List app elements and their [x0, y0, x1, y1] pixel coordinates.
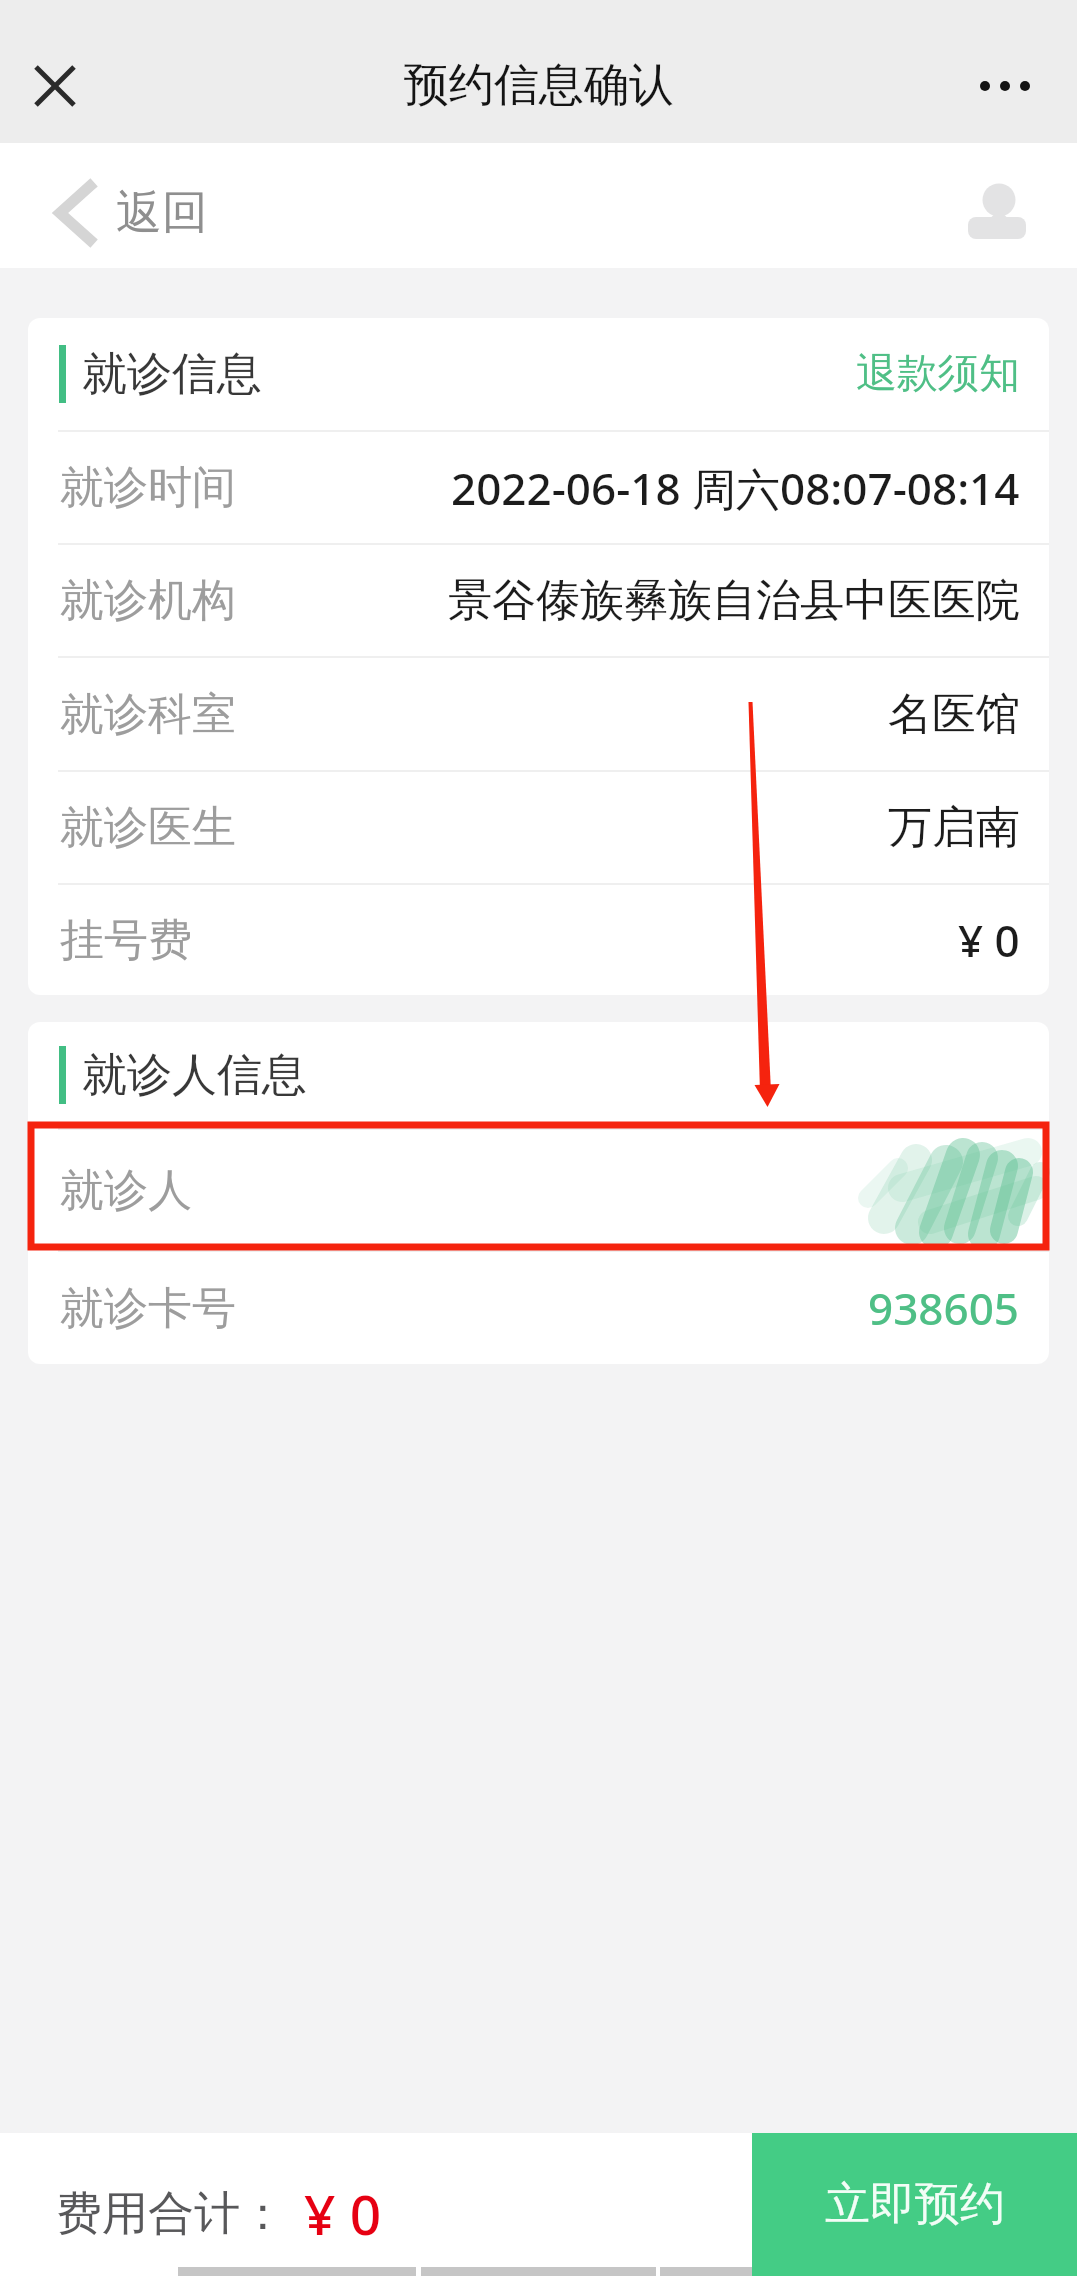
staticText: 就诊机构: [60, 573, 236, 628]
staticText: ¥ 0: [304, 2176, 382, 2251]
staticText: 挂号费: [60, 913, 192, 968]
staticText: 就诊人信息: [82, 1047, 307, 1104]
button[interactable]: 挂号费: [28, 885, 1049, 995]
button[interactable]: 就诊医生: [28, 772, 1049, 883]
staticText: 景谷傣族彝族自治县中医医院: [448, 573, 1020, 628]
button[interactable]: [966, 180, 1077, 240]
button[interactable]: [980, 76, 1077, 96]
button[interactable]: 就诊时间: [28, 432, 1049, 543]
button[interactable]: 退款须知: [856, 348, 1049, 400]
staticText: 就诊人: [60, 1163, 192, 1218]
staticText: 就诊时间: [60, 460, 236, 515]
staticText: 938605: [868, 1278, 1020, 1338]
button[interactable]: 就诊人: [28, 1130, 1049, 1250]
staticText: 费用合计：: [56, 2185, 286, 2243]
button[interactable]: 就诊科室: [28, 658, 1049, 770]
button[interactable]: [0, 67, 74, 105]
staticText: 名医馆: [888, 687, 1020, 742]
button[interactable]: 立即预约: [752, 2133, 1077, 2276]
button[interactable]: 返回: [0, 184, 208, 242]
staticText: ¥ 0: [958, 910, 1020, 970]
staticText: 预约信息确认: [404, 57, 674, 114]
staticText: 万启南: [888, 800, 1020, 855]
staticText: 就诊医生: [60, 800, 236, 855]
staticText: 就诊信息: [82, 346, 262, 403]
button[interactable]: 就诊卡号: [28, 1252, 1049, 1364]
staticText: 2022-06-18 周六08:07-08:14: [451, 458, 1020, 518]
staticText: 返回: [116, 184, 208, 242]
staticText: 就诊卡号: [60, 1281, 236, 1336]
staticText: 立即预约: [825, 2176, 1005, 2233]
staticText: 就诊科室: [60, 687, 236, 742]
staticText: 退款须知: [856, 348, 1020, 400]
button[interactable]: 就诊机构: [28, 545, 1049, 656]
